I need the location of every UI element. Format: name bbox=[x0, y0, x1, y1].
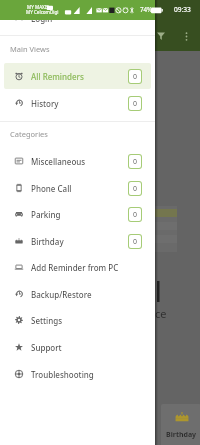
staticText: Miscellaneous bbox=[31, 156, 86, 167]
button[interactable]: History bbox=[4, 90, 151, 116]
staticText: Main Views bbox=[10, 44, 50, 54]
staticText: ce bbox=[155, 306, 167, 321]
button[interactable]: Birthday bbox=[161, 404, 200, 445]
staticText: Phone Call bbox=[31, 183, 72, 194]
staticText: Troubleshooting bbox=[31, 369, 94, 380]
staticText: Settings bbox=[31, 315, 63, 326]
button[interactable]: Phone Call bbox=[4, 175, 151, 201]
button[interactable]: Filter bbox=[152, 27, 170, 45]
staticText: Birthday bbox=[166, 430, 197, 440]
staticText: History bbox=[31, 98, 59, 109]
button[interactable]: All Reminders bbox=[4, 63, 151, 89]
staticText: Categories bbox=[10, 129, 48, 139]
staticText: 74% bbox=[140, 5, 153, 13]
staticText: 0 bbox=[133, 237, 138, 247]
button[interactable]: Troubleshooting bbox=[4, 361, 151, 387]
button[interactable]: More options bbox=[177, 27, 195, 45]
button[interactable]: Birthday bbox=[4, 228, 151, 254]
staticText: 0 bbox=[133, 72, 138, 82]
button[interactable]: Parking bbox=[4, 201, 151, 227]
staticText: 0 bbox=[133, 184, 138, 194]
button[interactable]: Miscellaneous bbox=[4, 148, 151, 174]
staticText: Backup/Restore bbox=[31, 289, 92, 300]
staticText: Add Reminder from PC bbox=[31, 262, 119, 273]
button[interactable]: Settings bbox=[4, 307, 151, 333]
staticText: MY MAXIS bbox=[27, 4, 49, 10]
staticText: MY CelcomDigi bbox=[26, 9, 59, 15]
staticText: All Reminders bbox=[31, 71, 84, 82]
staticText: Support bbox=[31, 342, 62, 353]
button[interactable]: Support bbox=[4, 334, 151, 360]
staticText: Login bbox=[31, 13, 53, 24]
staticText: Parking bbox=[31, 209, 61, 220]
button[interactable]: Add Reminder from PC bbox=[4, 254, 151, 280]
staticText: 0 bbox=[133, 99, 138, 109]
staticText: 09:33 bbox=[174, 5, 191, 14]
button[interactable]: Backup/Restore bbox=[4, 281, 151, 307]
staticText: 0 bbox=[133, 157, 138, 167]
staticText: Birthday bbox=[31, 236, 64, 247]
staticText: 0 bbox=[133, 210, 138, 220]
button[interactable]: Login bbox=[4, 5, 151, 31]
